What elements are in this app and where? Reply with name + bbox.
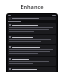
staticText: Enhance xyxy=(20,3,44,10)
button[interactable] xyxy=(8,57,56,66)
button[interactable] xyxy=(8,67,56,72)
button[interactable] xyxy=(8,35,56,44)
button[interactable]: Search xyxy=(8,17,56,20)
button[interactable] xyxy=(8,23,56,34)
button[interactable] xyxy=(8,45,56,56)
